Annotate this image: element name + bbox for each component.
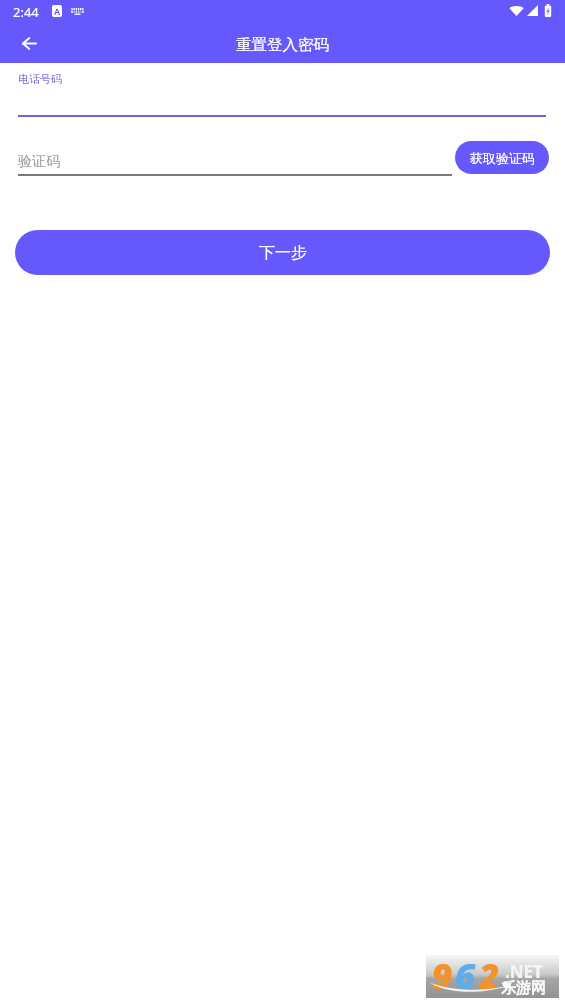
button[interactable]: 下一步 xyxy=(15,230,550,275)
staticText: 验证码 xyxy=(18,153,60,171)
button[interactable]: Back xyxy=(11,25,47,61)
staticText: 乐游网 xyxy=(501,979,546,998)
staticText: 2:44 xyxy=(13,3,39,21)
staticText: 2 xyxy=(479,952,500,995)
button[interactable]: 验证码 xyxy=(18,146,452,176)
button[interactable]: 电话号码 xyxy=(18,68,546,118)
staticText: 电话号码 xyxy=(18,72,62,86)
staticText: 重置登入密码 xyxy=(0,35,565,55)
staticText: 6 xyxy=(455,952,476,995)
staticText: A xyxy=(54,5,61,17)
staticText: 9 xyxy=(432,952,453,995)
staticText: 下一步 xyxy=(259,243,307,263)
button[interactable]: 获取验证码 xyxy=(455,141,549,174)
staticText: .NET xyxy=(505,960,543,983)
staticText: 获取验证码 xyxy=(470,150,535,166)
